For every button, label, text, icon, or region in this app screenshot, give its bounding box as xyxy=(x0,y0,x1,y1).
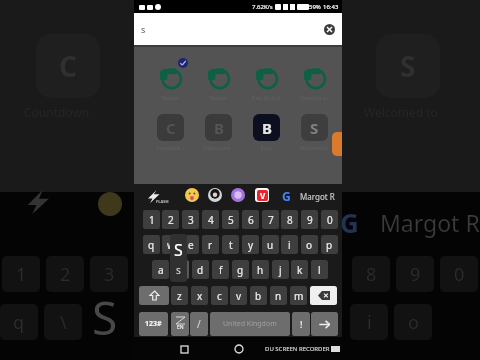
staticText: United Kingdom xyxy=(223,319,277,329)
staticText: G xyxy=(282,188,291,202)
staticText: l xyxy=(318,263,321,277)
staticText: Countdown xyxy=(24,104,90,120)
button[interactable]: b xyxy=(250,286,267,305)
button[interactable]: Home xyxy=(233,343,245,355)
staticText: c xyxy=(217,289,222,303)
button[interactable]: l xyxy=(311,260,328,279)
button[interactable]: y xyxy=(242,235,259,254)
button[interactable]: s xyxy=(172,260,189,279)
button[interactable]: Clear search xyxy=(324,24,335,35)
button[interactable]: 2 xyxy=(162,210,179,229)
button[interactable]: r xyxy=(202,235,219,254)
button[interactable]: Trending ac xyxy=(292,63,336,102)
button[interactable]: g xyxy=(232,260,249,279)
staticText: 2 xyxy=(168,213,174,227)
button[interactable]: B xyxy=(196,114,240,152)
button[interactable]: Compose xyxy=(332,132,342,156)
button[interactable]: 0 xyxy=(321,210,338,229)
button[interactable]: f xyxy=(212,260,229,279)
button[interactable]: United Kingdom xyxy=(210,312,290,336)
button[interactable]: c xyxy=(211,286,228,305)
button[interactable]: q xyxy=(143,235,160,254)
staticText: 0 xyxy=(327,213,333,227)
staticText: 3 xyxy=(188,213,194,227)
button[interactable]: h xyxy=(252,260,269,279)
button[interactable]: p xyxy=(321,235,338,254)
staticText: 7.62K/s xyxy=(252,3,273,11)
button[interactable]: 123# xyxy=(139,312,168,336)
button[interactable]: a xyxy=(152,260,169,279)
staticText: \ xyxy=(60,310,67,335)
button[interactable]: n xyxy=(270,286,287,305)
staticText: S xyxy=(310,118,319,138)
staticText: ! xyxy=(300,318,303,330)
button[interactable]: v xyxy=(230,286,247,305)
staticText: Margot R xyxy=(300,191,335,202)
staticText: 7 xyxy=(268,213,274,227)
staticText: Margot R xyxy=(380,207,480,238)
staticText: o xyxy=(306,238,313,252)
button[interactable]: 3 xyxy=(182,210,199,229)
button[interactable]: 1 xyxy=(143,210,160,229)
staticText: 5 xyxy=(228,213,234,227)
button[interactable]: Flash keyboard xyxy=(147,190,160,203)
button[interactable]: S xyxy=(292,114,336,152)
button[interactable]: 4 xyxy=(202,210,219,229)
button[interactable]: o xyxy=(301,235,318,254)
button[interactable]: z xyxy=(171,286,188,305)
staticText: e xyxy=(188,238,194,252)
button[interactable]: ! xyxy=(292,312,310,336)
staticText: i xyxy=(367,310,372,335)
button[interactable]: 7 xyxy=(262,210,279,229)
staticText: s xyxy=(178,263,183,277)
staticText: 9 xyxy=(307,213,313,227)
button[interactable]: Easy Bank 2 xyxy=(244,63,288,102)
staticText: B xyxy=(214,118,224,138)
button[interactable]: u xyxy=(262,235,279,254)
button[interactable]: Nessun xyxy=(148,63,192,102)
button[interactable]: e xyxy=(182,235,199,254)
button[interactable]: Avatar xyxy=(208,188,222,202)
button[interactable]: d xyxy=(192,260,209,279)
button[interactable]: Nessun xyxy=(196,63,240,102)
button[interactable]: i xyxy=(281,235,298,254)
button[interactable]: / xyxy=(190,312,208,336)
staticText: b xyxy=(255,289,262,303)
button[interactable]: V app xyxy=(255,188,269,202)
staticText: / xyxy=(197,317,201,331)
button[interactable]: Emoji xyxy=(185,188,199,202)
staticText: s xyxy=(176,263,181,277)
button[interactable]: Enter xyxy=(311,312,338,336)
staticText: r xyxy=(208,238,213,252)
button[interactable]: 6 xyxy=(242,210,259,229)
staticText: G xyxy=(340,205,359,240)
staticText: o xyxy=(408,310,419,335)
button[interactable]: Switch language xyxy=(171,312,189,336)
button[interactable]: Stickers xyxy=(231,188,245,202)
button[interactable]: m xyxy=(290,286,307,305)
button[interactable]: B xyxy=(244,114,288,152)
button[interactable]: w xyxy=(162,235,179,254)
staticText: m xyxy=(294,289,304,303)
button[interactable]: Google search xyxy=(279,188,293,202)
button[interactable]: 9 xyxy=(301,210,318,229)
button[interactable]: 5 xyxy=(222,210,239,229)
staticText: z xyxy=(177,289,182,303)
staticText: d xyxy=(197,263,204,277)
staticText: C xyxy=(166,118,176,138)
staticText: V xyxy=(260,190,266,201)
staticText: f xyxy=(219,263,223,277)
staticText: u xyxy=(267,238,274,252)
button[interactable]: Shift xyxy=(139,286,169,305)
staticText: x xyxy=(197,289,203,303)
button[interactable]: 8 xyxy=(281,210,298,229)
staticText: FLASH xyxy=(156,199,169,204)
button[interactable]: Recents xyxy=(178,343,190,355)
button[interactable]: C xyxy=(148,114,192,152)
button[interactable]: k xyxy=(291,260,308,279)
button[interactable]: Backspace xyxy=(310,286,337,305)
button[interactable]: t xyxy=(222,235,239,254)
button[interactable]: x xyxy=(191,286,208,305)
button[interactable]: j xyxy=(272,260,289,279)
